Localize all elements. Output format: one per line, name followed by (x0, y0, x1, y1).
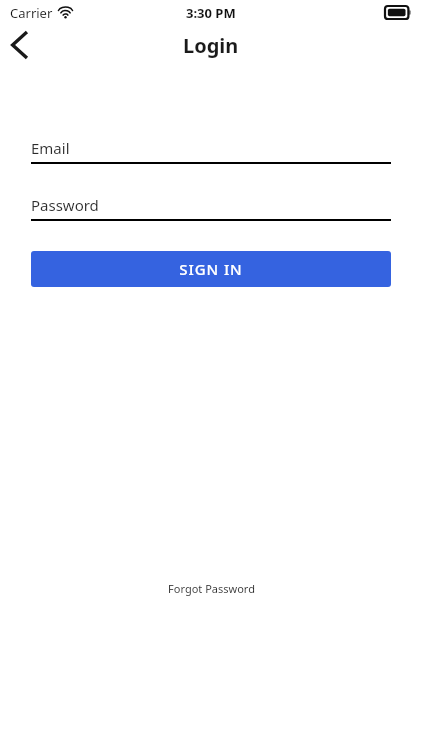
button[interactable]: Forgot Password (168, 581, 255, 596)
staticText: Carrier (10, 4, 53, 22)
staticText: SIGN IN (179, 259, 243, 279)
staticText: Login (183, 32, 239, 59)
button[interactable]: Back (0, 25, 41, 65)
staticText: Password (31, 195, 99, 215)
button[interactable]: Password (31, 193, 391, 221)
staticText: Forgot Password (168, 581, 255, 596)
button[interactable]: Email (31, 136, 391, 164)
staticText: Email (31, 138, 70, 158)
staticText: 3:30 PM (186, 4, 236, 22)
button[interactable]: SIGN IN (31, 251, 391, 287)
